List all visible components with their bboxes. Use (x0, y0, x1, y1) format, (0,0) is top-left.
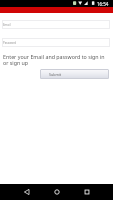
button[interactable]: Home (46, 184, 68, 200)
staticText: Email (3, 23, 11, 27)
button[interactable]: Recent apps (76, 184, 98, 200)
button[interactable]: Back (16, 184, 38, 200)
staticText: Submit (49, 72, 61, 77)
button[interactable]: Password (2, 38, 110, 47)
button[interactable]: Email (2, 20, 110, 29)
button[interactable]: Submit (40, 69, 109, 79)
staticText: 16:54 (97, 1, 109, 7)
staticText: Enter your Email and password to sign in… (3, 53, 107, 67)
staticText: Password (3, 41, 17, 45)
